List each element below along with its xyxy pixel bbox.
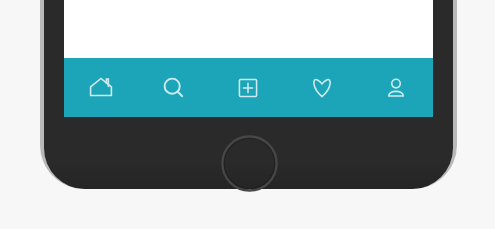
button[interactable]: Home button: [221, 135, 278, 192]
button[interactable]: Home: [64, 58, 137, 117]
button[interactable]: Activity: [285, 58, 359, 117]
button[interactable]: Add post: [211, 58, 285, 117]
button[interactable]: Profile: [359, 58, 433, 117]
button[interactable]: Search: [137, 58, 211, 117]
